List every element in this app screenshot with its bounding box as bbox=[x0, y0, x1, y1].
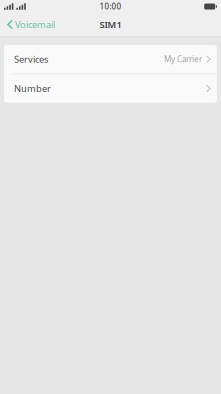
staticText: My Carrier bbox=[164, 54, 202, 64]
staticText: Number bbox=[14, 82, 51, 95]
button[interactable]: Number bbox=[4, 74, 217, 103]
staticText: Voicemail bbox=[15, 18, 55, 31]
staticText: 10:00 bbox=[99, 1, 121, 12]
button[interactable]: Voicemail bbox=[0, 13, 61, 35]
button[interactable]: Services bbox=[4, 45, 217, 73]
staticText: Services bbox=[14, 53, 48, 65]
staticText: SIM1 bbox=[99, 18, 121, 31]
